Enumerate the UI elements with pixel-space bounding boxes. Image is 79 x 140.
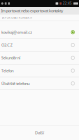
- button[interactable]: Sekundární: [0, 52, 79, 64]
- staticText: kovikaj@email.cz: [1, 29, 32, 35]
- staticText: EXPORTOVAT KONTAKTY: [2, 16, 33, 19]
- button[interactable]: Telefon: [0, 64, 79, 77]
- staticText: Sekundární: [1, 55, 20, 60]
- button[interactable]: Další: [0, 125, 79, 140]
- staticText: Importovat nebo exportovat kontakty: [1, 8, 63, 13]
- staticText: Úložiště telefonu: [1, 81, 29, 86]
- button[interactable]: O2-CZ: [0, 39, 79, 52]
- button[interactable]: Úložiště telefonu: [0, 77, 79, 90]
- staticText: Telefon: [1, 68, 13, 73]
- staticText: Další: [35, 130, 44, 135]
- staticText: 22:45: [63, 2, 72, 5]
- staticText: O2-CZ: [1, 42, 12, 48]
- button[interactable]: kovikaj@email.cz: [0, 26, 79, 39]
